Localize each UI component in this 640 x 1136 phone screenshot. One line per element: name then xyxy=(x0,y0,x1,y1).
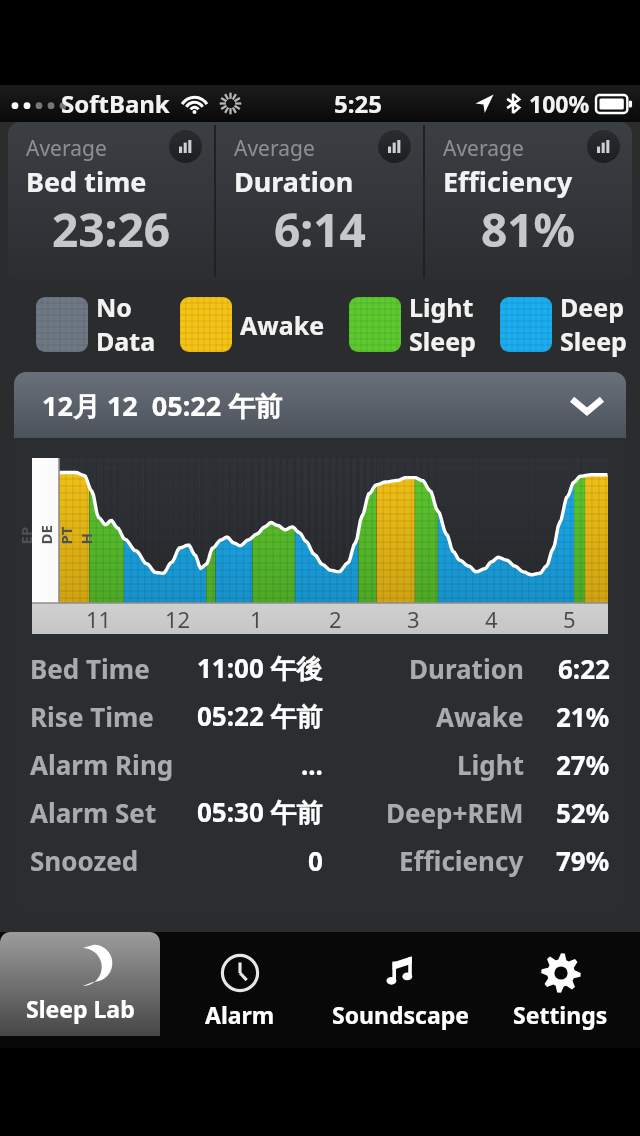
button[interactable]: Show Duration chart xyxy=(378,130,411,163)
staticText: Average xyxy=(26,134,107,163)
button[interactable]: Show Efficiency chart xyxy=(587,130,620,163)
staticText: Settings xyxy=(513,999,608,1030)
staticText: 4 xyxy=(485,604,498,634)
staticText: 79% xyxy=(556,843,610,878)
staticText: Alarm Set xyxy=(30,795,157,830)
staticText: 5 xyxy=(563,604,576,634)
staticText: 52% xyxy=(556,795,610,830)
staticText: 12月 12 05:22 午前 xyxy=(42,387,283,424)
staticText: ... xyxy=(301,747,323,782)
staticText: Light xyxy=(409,290,474,324)
staticText: 05:30 午前 xyxy=(197,794,323,830)
button[interactable]: 12月 12 05:22 午前 xyxy=(14,372,626,438)
button[interactable]: Average xyxy=(8,122,214,280)
staticText: 6:14 xyxy=(274,198,366,261)
staticText: Deep xyxy=(560,290,624,324)
staticText: 3 xyxy=(407,604,420,634)
button[interactable]: Sleep Lab xyxy=(0,932,160,1036)
staticText: Sleep xyxy=(409,324,476,358)
staticText: 81% xyxy=(481,198,576,261)
staticText: Awake xyxy=(240,308,325,342)
staticText: 100% xyxy=(529,88,590,119)
staticText: Rise Time xyxy=(30,699,154,734)
staticText: No xyxy=(96,290,132,324)
staticText: 21% xyxy=(556,699,610,734)
staticText: 2 xyxy=(329,604,342,634)
staticText: Sleep Lab xyxy=(26,993,135,1024)
staticText: Snoozed xyxy=(30,843,139,878)
other: Expand xyxy=(570,388,604,422)
staticText: Efficiency xyxy=(443,163,573,200)
button[interactable]: Average xyxy=(216,122,423,280)
staticText: Alarm Ring xyxy=(30,747,174,782)
staticText: 11 xyxy=(86,604,112,634)
staticText: Awake xyxy=(436,699,524,734)
staticText: Average xyxy=(234,134,315,163)
staticText: 23:26 xyxy=(52,198,171,261)
staticText: Duration xyxy=(409,651,524,686)
staticText: Soundscape xyxy=(332,999,469,1030)
staticText: Data xyxy=(96,324,156,358)
staticText: 27% xyxy=(556,747,610,782)
button[interactable]: Average xyxy=(425,122,632,280)
staticText: Sleep xyxy=(560,324,627,358)
staticText: Bed Time xyxy=(30,651,150,686)
button[interactable]: Alarm xyxy=(160,932,320,1048)
staticText: 5:25 xyxy=(334,87,382,120)
staticText: 6:22 xyxy=(558,651,610,686)
staticText: SoftBank xyxy=(61,87,170,120)
button[interactable]: Settings xyxy=(480,932,640,1048)
button[interactable]: Soundscape xyxy=(320,932,480,1048)
staticText: 05:22 午前 xyxy=(197,698,323,734)
staticText: Average xyxy=(443,134,524,163)
staticText: SLEEP DEPTH xyxy=(14,517,95,544)
staticText: 1 xyxy=(250,604,263,634)
staticText: Bed time xyxy=(26,163,147,200)
staticText: Efficiency xyxy=(399,843,524,878)
staticText: 11:00 午後 xyxy=(197,650,323,686)
staticText: Light xyxy=(457,747,524,782)
staticText: Deep+REM xyxy=(386,795,524,830)
staticText: 0 xyxy=(308,843,323,878)
staticText: Duration xyxy=(234,163,354,200)
staticText: 12 xyxy=(165,604,191,634)
button[interactable]: Show Bed time chart xyxy=(169,130,202,163)
staticText: Alarm xyxy=(205,999,275,1030)
